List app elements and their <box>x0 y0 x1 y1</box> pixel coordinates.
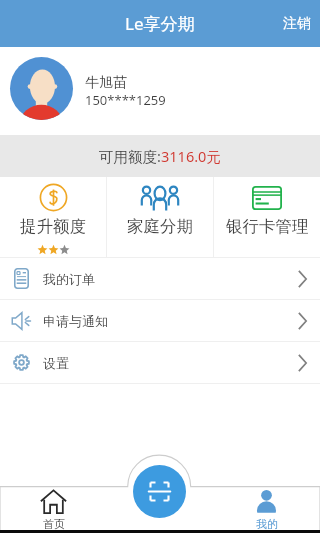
button[interactable]: 扫一扫 <box>133 465 186 518</box>
button[interactable]: 设置 <box>0 342 320 383</box>
staticText: 我的订单 <box>43 271 95 287</box>
button[interactable]: 我的 <box>253 489 280 531</box>
button[interactable]: 提升额度 <box>0 177 106 257</box>
staticText: 家庭分期 <box>127 216 193 237</box>
staticText: 牛旭苗 <box>85 74 127 92</box>
button[interactable]: 家庭分期 <box>107 177 213 257</box>
button[interactable]: 我的订单 <box>0 258 320 299</box>
staticText: 可用额度: <box>99 146 161 166</box>
staticText: 注销 <box>283 15 311 33</box>
staticText: 申请与通知 <box>43 313 108 329</box>
staticText: 首页 <box>43 517 65 531</box>
staticText: Le享分期 <box>125 12 195 35</box>
button[interactable]: 银行卡管理 <box>214 177 320 257</box>
button[interactable]: 申请与通知 <box>0 300 320 341</box>
staticText: 银行卡管理 <box>226 216 309 237</box>
staticText: 3116.0元 <box>161 146 221 166</box>
staticText: 150****1259 <box>85 91 166 109</box>
staticText: 提升额度 <box>20 216 86 237</box>
button[interactable]: 首页 <box>40 489 67 531</box>
staticText: 设置 <box>43 355 69 371</box>
staticText: 我的 <box>256 517 278 531</box>
button[interactable]: 牛旭苗 <box>0 47 320 135</box>
button[interactable]: 注销 <box>274 4 320 44</box>
